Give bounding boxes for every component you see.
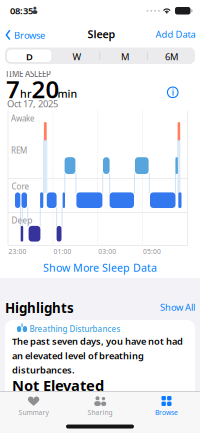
staticText: 23:00 <box>8 247 26 256</box>
staticText: 03:00 <box>98 247 116 256</box>
staticText: Summary <box>19 408 49 417</box>
staticText: hr <box>20 86 32 101</box>
button[interactable]: Sharing <box>87 396 112 417</box>
staticText: Not Elevated <box>12 375 104 395</box>
staticText: 6M <box>165 50 178 63</box>
staticText: REM <box>11 145 27 156</box>
staticText: Sleep <box>87 27 115 41</box>
staticText: 7 <box>6 73 20 105</box>
staticText: Add Data <box>155 28 195 40</box>
button[interactable]: W <box>72 50 81 63</box>
button[interactable]: Summary <box>19 396 49 417</box>
staticText: Show More Sleep Data <box>43 260 157 275</box>
staticText: Awake <box>11 113 35 124</box>
staticText: Deep <box>11 215 32 226</box>
staticText: D <box>26 50 33 63</box>
staticText: Browse <box>14 29 45 41</box>
button[interactable]: About Sleep <box>167 87 178 98</box>
staticText: TIME ASLEEP <box>5 68 51 79</box>
button[interactable]: Add Data <box>155 28 195 40</box>
staticText: i <box>172 87 174 98</box>
staticText: Highlights <box>5 299 74 317</box>
button[interactable]: D <box>26 50 33 63</box>
staticText: Oct 17, 2025 <box>7 97 58 110</box>
staticText: W <box>72 50 81 63</box>
staticText: 05:00 <box>143 247 161 256</box>
button[interactable]: M <box>121 50 129 63</box>
staticText: min <box>57 86 77 101</box>
button[interactable]: 6M <box>165 50 178 63</box>
button[interactable]: Browse <box>5 29 45 41</box>
staticText: Core <box>11 181 29 192</box>
staticText: 08:35 <box>10 4 33 17</box>
staticText: 01:00 <box>53 247 71 256</box>
button[interactable]: Show More Sleep Data <box>0 260 200 275</box>
staticText: Sharing <box>87 408 112 417</box>
staticText: The past seven days, you have not had an… <box>12 335 183 376</box>
button[interactable]: Show All <box>160 301 195 313</box>
staticText: Breathing Disturbances <box>29 323 120 334</box>
staticText: Browse <box>155 408 178 417</box>
staticText: Show All <box>160 301 195 313</box>
staticText: 20 <box>31 73 59 105</box>
button[interactable]: Browse <box>155 396 178 417</box>
staticText: M <box>121 50 129 63</box>
